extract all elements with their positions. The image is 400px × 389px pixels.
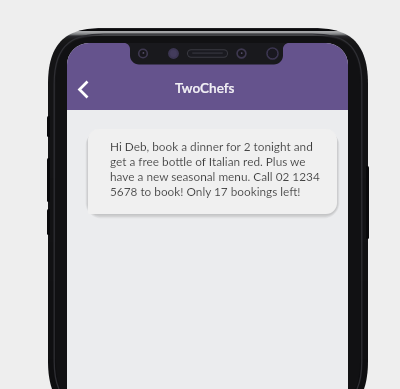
button[interactable]: Hi Deb, book a dinner for 2 tonight and … xyxy=(88,129,337,214)
button[interactable]: Back xyxy=(67,71,101,107)
staticText: TwoChefs xyxy=(175,80,235,96)
staticText: Hi Deb, book a dinner for 2 tonight and … xyxy=(110,138,326,198)
